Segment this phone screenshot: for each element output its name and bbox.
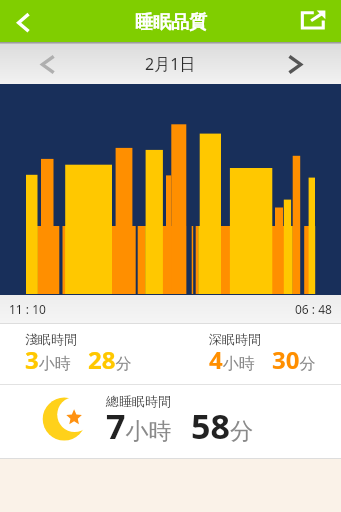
button[interactable]: Share: [295, 0, 341, 42]
staticText: 30分: [272, 343, 316, 376]
staticText: 11 : 10: [9, 301, 46, 317]
staticText: 28分: [88, 343, 132, 376]
button[interactable]: Back: [0, 0, 44, 42]
staticText: 總睡眠時間: [106, 393, 171, 409]
button[interactable]: 深眠時間: [209, 324, 339, 384]
button[interactable]: 淺眠時間: [25, 324, 155, 384]
staticText: 3小時: [25, 343, 71, 376]
staticText: 06 : 48: [295, 301, 332, 317]
button[interactable]: Previous day: [0, 44, 80, 84]
staticText: 7小時: [106, 403, 172, 449]
staticText: 睡眠品質: [135, 11, 207, 34]
staticText: 深眠時間: [209, 331, 261, 347]
staticText: 58分: [191, 403, 253, 449]
staticText: 2月1日: [145, 53, 196, 75]
staticText: 4小時: [209, 343, 255, 376]
button[interactable]: Next day: [261, 44, 341, 84]
staticText: 淺眠時間: [25, 331, 77, 347]
